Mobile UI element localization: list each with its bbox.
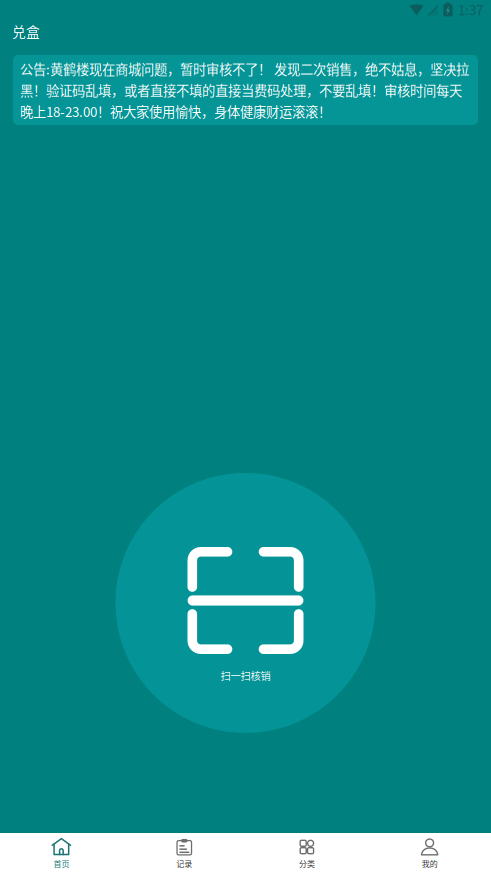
button[interactable]: 分类 <box>245 834 368 873</box>
staticText: 记录 <box>176 858 192 869</box>
staticText: 兑盒 <box>12 21 40 41</box>
button[interactable]: 扫一扫核销 <box>115 473 375 733</box>
staticText: 扫一扫核销 <box>220 668 270 683</box>
button[interactable]: 首页 <box>0 834 123 873</box>
staticText: 分类 <box>299 858 315 869</box>
button[interactable]: 记录 <box>123 834 246 873</box>
staticText: 首页 <box>53 858 69 869</box>
button[interactable]: 我的 <box>368 834 491 873</box>
staticText: 1:37 <box>458 0 483 19</box>
staticText: 公告:黄鹤楼现在商城问题，暂时审核不了！ 发现二次销售，绝不姑息，坚决拉黑！验证… <box>20 59 469 121</box>
staticText: 我的 <box>422 858 438 869</box>
